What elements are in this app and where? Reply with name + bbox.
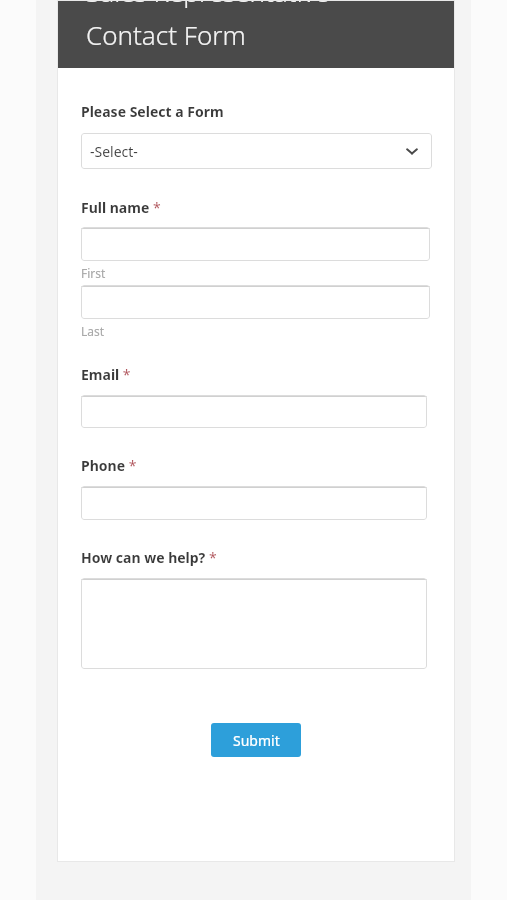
staticText: -Select- — [90, 142, 138, 161]
button[interactable]: How can we help — [81, 578, 427, 669]
button[interactable]: Submit — [211, 723, 301, 757]
staticText: Contact Form — [86, 17, 246, 52]
button[interactable]: Select a form — [81, 133, 432, 169]
button[interactable]: Last name — [81, 285, 430, 319]
staticText: How can we help? * — [81, 548, 217, 567]
staticText: Full name * — [81, 198, 161, 217]
staticText: Phone * — [81, 456, 137, 475]
staticText: Submit — [233, 731, 280, 750]
staticText: First — [81, 265, 106, 281]
staticText: Last — [81, 323, 105, 339]
button[interactable]: Phone — [81, 486, 427, 520]
staticText: Email * — [81, 365, 131, 384]
button[interactable]: Email — [81, 395, 427, 428]
button[interactable]: First name — [81, 227, 430, 261]
staticText: Please Select a Form — [81, 102, 224, 121]
staticText: Sales Representative — [86, 0, 330, 9]
